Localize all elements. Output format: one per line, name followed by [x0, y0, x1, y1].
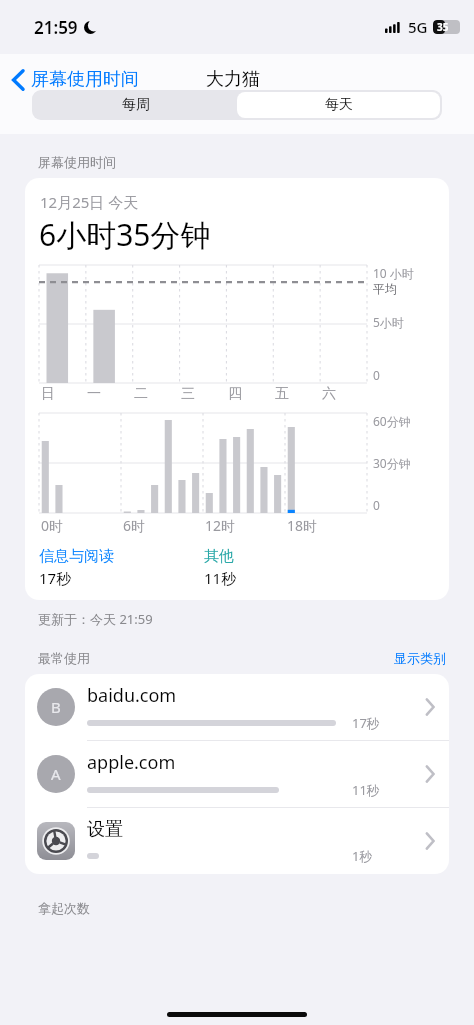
staticText: 显示类别 [394, 650, 446, 666]
other: 返回 [12, 69, 25, 91]
staticText: apple.com [87, 750, 176, 775]
staticText: 每周 [122, 96, 150, 114]
button[interactable]: 每周 [34, 92, 237, 118]
staticText: 日 [41, 385, 55, 403]
button[interactable]: 显示类别 [394, 650, 446, 666]
staticText: 35 [437, 20, 449, 34]
staticText: 30分钟 [373, 455, 411, 471]
staticText: 5小时 [373, 314, 404, 330]
staticText: 更新于：今天 21:59 [38, 610, 153, 628]
staticText: 设置 [87, 818, 123, 841]
staticText: 大力猫 [206, 68, 260, 91]
staticText: 屏幕使用时间 [38, 154, 116, 170]
staticText: 四 [228, 385, 242, 403]
staticText: 三 [181, 385, 195, 403]
staticText: 每天 [325, 96, 353, 114]
staticText: 拿起次数 [38, 900, 90, 916]
other: 详情 [425, 832, 435, 850]
button[interactable]: 设置 [25, 808, 449, 874]
staticText: 屏幕使用时间 [31, 68, 139, 91]
other: 详情 [425, 698, 435, 716]
staticText: 1秒 [352, 847, 373, 865]
button[interactable]: 12月25日 今天 [25, 178, 449, 600]
staticText: 12时 [205, 516, 236, 535]
staticText: baidu.com [87, 683, 177, 708]
staticText: A [51, 764, 61, 784]
staticText: 0时 [41, 516, 64, 535]
button[interactable]: A [25, 741, 449, 808]
staticText: 10 小时 [373, 265, 414, 281]
staticText: 21:59 [34, 16, 78, 39]
staticText: 18时 [287, 516, 318, 535]
staticText: 0 [373, 367, 380, 383]
staticText: 二 [134, 385, 148, 403]
staticText: 六 [322, 385, 336, 403]
staticText: 6小时35分钟 [39, 214, 211, 255]
staticText: 五 [275, 385, 289, 403]
staticText: 最常使用 [38, 650, 90, 666]
staticText: 17秒 [39, 568, 72, 588]
staticText: 17秒 [352, 714, 380, 732]
staticText: 一 [87, 385, 101, 403]
button[interactable]: 每天 [237, 92, 440, 118]
staticText: 平均 [373, 281, 397, 296]
staticText: 60分钟 [373, 413, 411, 429]
staticText: 11秒 [204, 568, 237, 588]
staticText: 11秒 [352, 781, 380, 799]
staticText: 信息与阅读 [39, 547, 114, 566]
staticText: B [51, 697, 61, 717]
staticText: 6时 [123, 516, 146, 535]
button[interactable]: B [25, 674, 449, 741]
staticText: 0 [373, 497, 380, 513]
button[interactable]: 返回 [12, 68, 139, 91]
staticText: 12月25日 今天 [40, 192, 139, 212]
staticText: 其他 [204, 547, 234, 566]
staticText: 5G [408, 17, 428, 37]
other: 详情 [425, 765, 435, 783]
